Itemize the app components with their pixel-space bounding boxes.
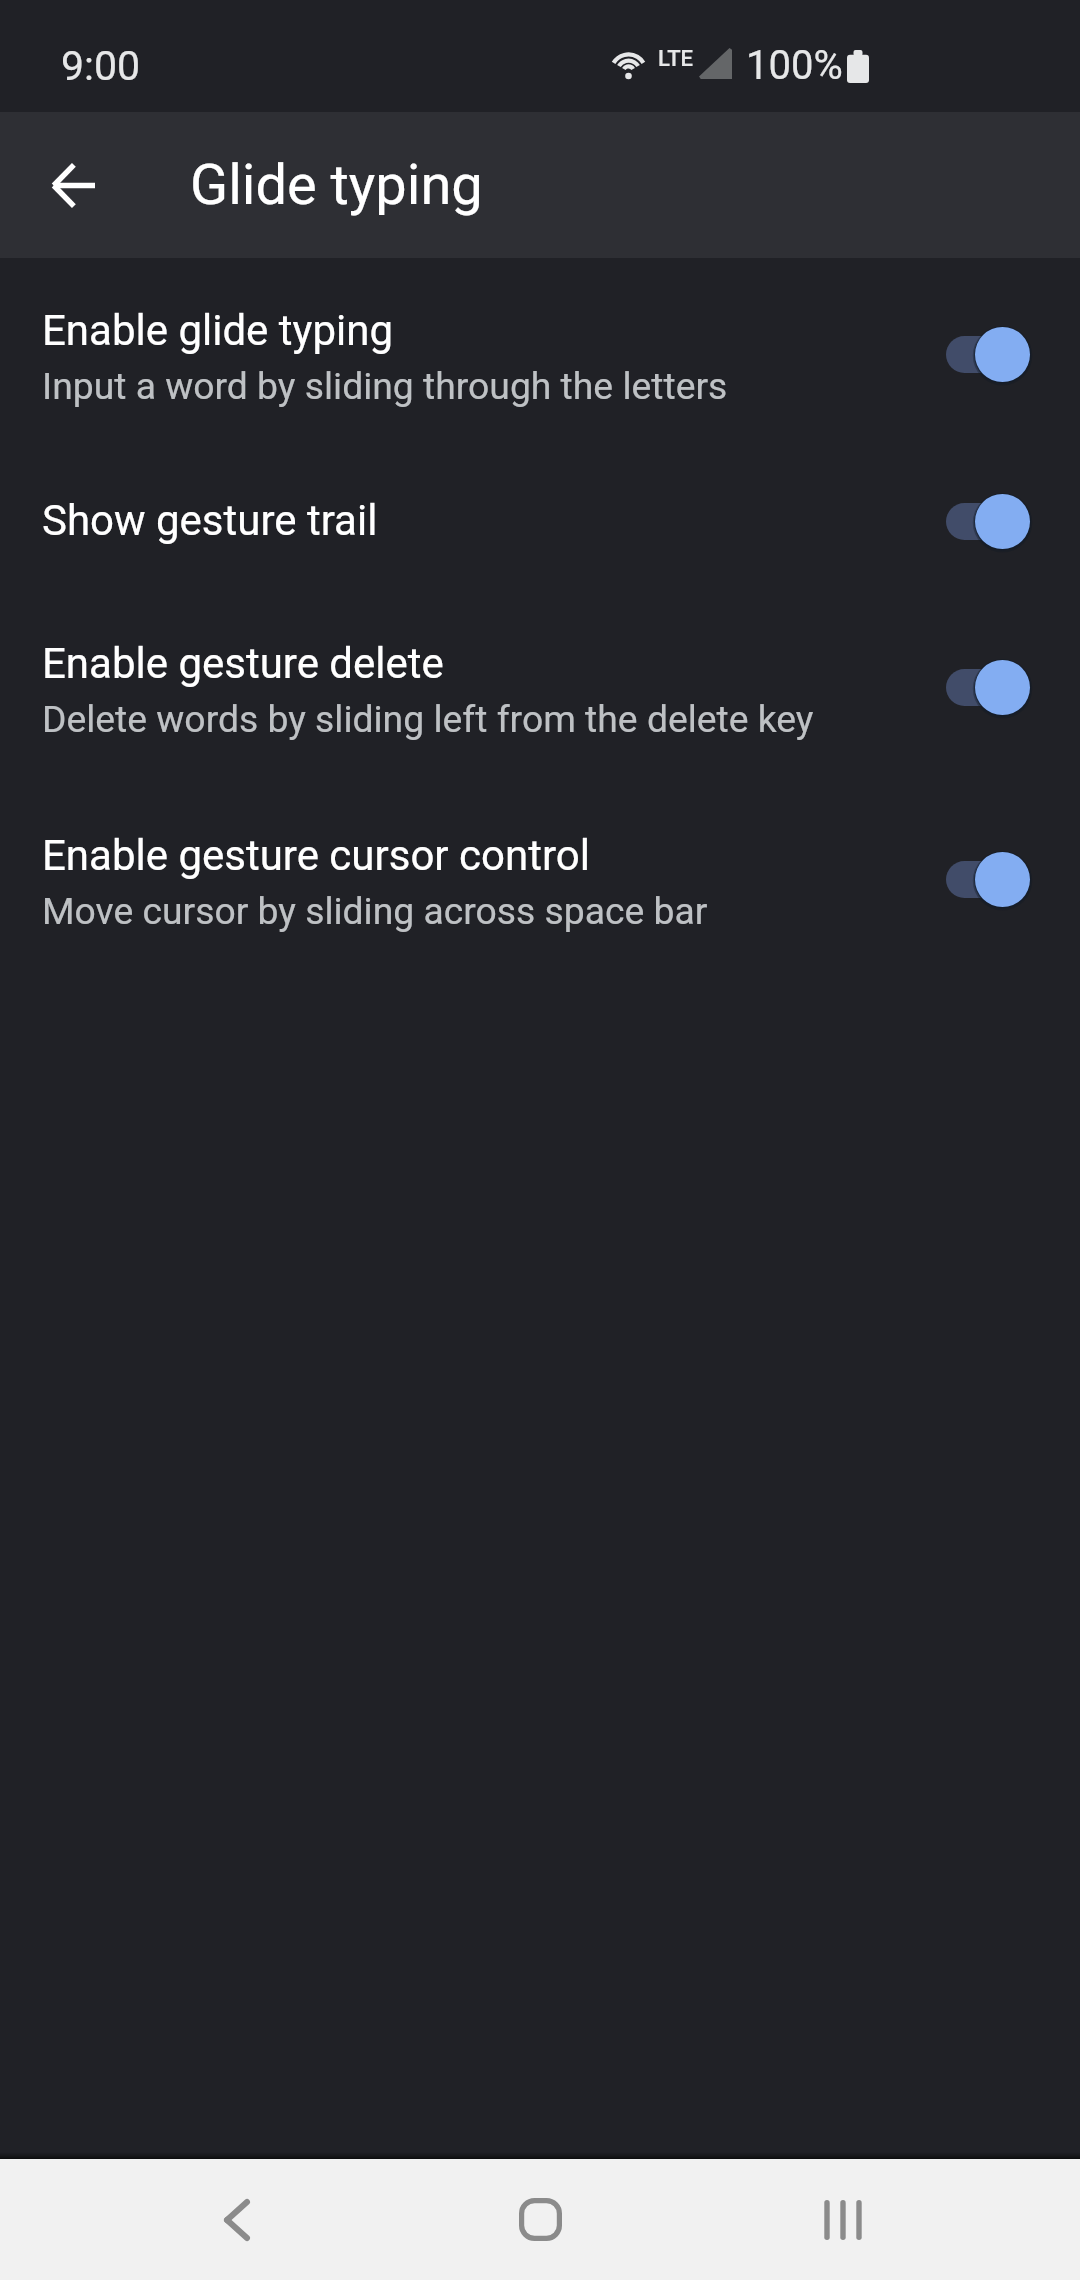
staticText: Enable gesture delete xyxy=(42,640,444,688)
button[interactable]: Enable glide typing xyxy=(0,274,1080,434)
staticText: LTE xyxy=(658,46,694,72)
staticText: Input a word by sliding through the lett… xyxy=(42,363,728,409)
button[interactable]: Enable gesture delete xyxy=(946,657,1030,717)
button[interactable]: Enable glide typing xyxy=(946,324,1030,384)
staticText: Delete words by sliding left from the de… xyxy=(42,696,814,742)
staticText: Move cursor by sliding across space bar xyxy=(42,888,708,934)
button[interactable]: Enable gesture cursor control xyxy=(0,799,1080,959)
staticText: 9:00 xyxy=(61,42,141,90)
staticText: Glide typing xyxy=(190,152,483,218)
button[interactable]: Enable gesture cursor control xyxy=(946,849,1030,909)
staticText: Show gesture trail xyxy=(42,497,378,545)
staticText: Enable gesture cursor control xyxy=(42,832,590,880)
staticText: 100% xyxy=(746,42,843,89)
button[interactable]: Navigate up xyxy=(0,112,146,258)
button[interactable]: Show gesture trail xyxy=(946,491,1030,551)
button[interactable]: Home xyxy=(450,2159,630,2280)
staticText: Enable glide typing xyxy=(42,307,393,355)
button[interactable]: Enable gesture delete xyxy=(0,608,1080,766)
button[interactable]: Back xyxy=(147,2159,327,2280)
button[interactable]: Show gesture trail xyxy=(0,434,1080,608)
button[interactable]: Recent apps xyxy=(753,2159,933,2280)
